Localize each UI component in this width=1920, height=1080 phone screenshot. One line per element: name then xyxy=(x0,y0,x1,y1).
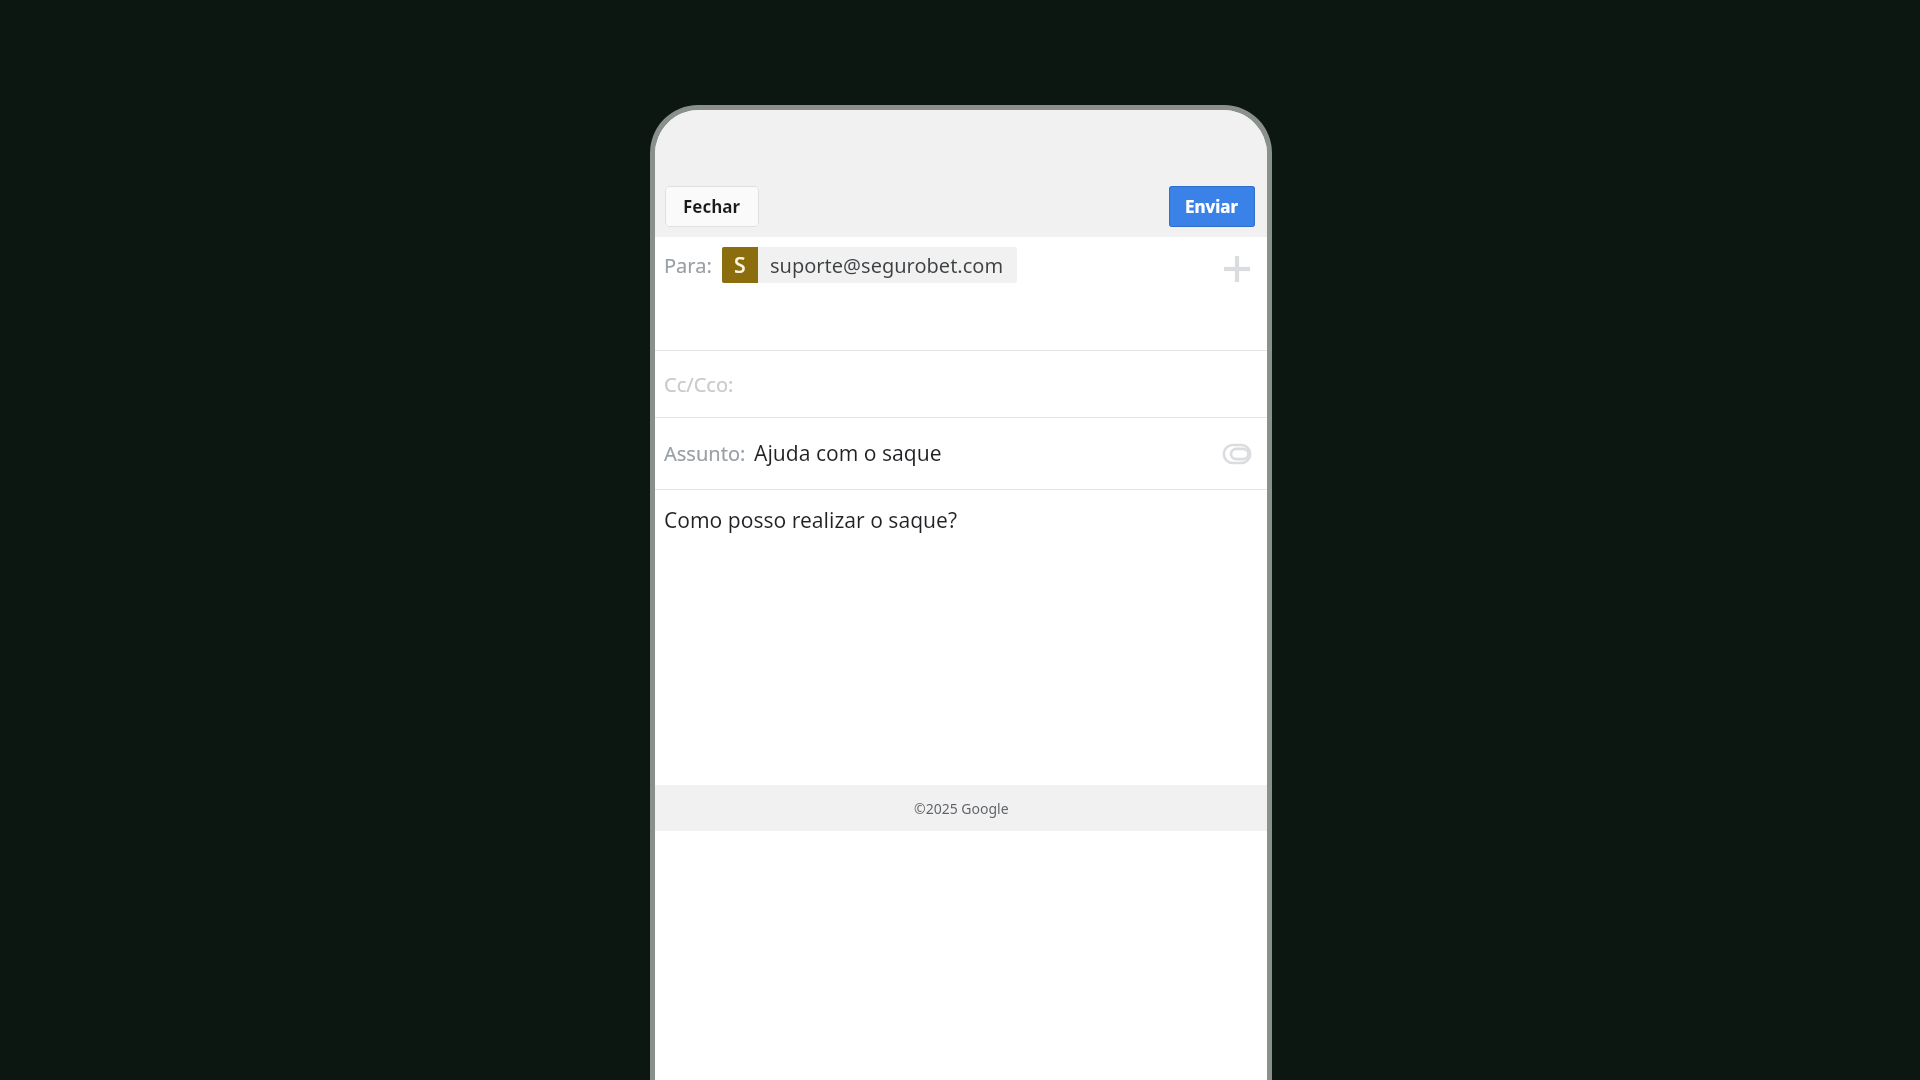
staticText: ©2025 Google xyxy=(914,799,1009,818)
button[interactable]: Fechar xyxy=(665,186,759,227)
button[interactable]: Enviar xyxy=(1169,186,1255,227)
staticText: Ajuda com o saque xyxy=(754,439,942,468)
staticText: Como posso realizar o saque? xyxy=(664,506,958,535)
button[interactable]: S xyxy=(722,247,1017,283)
staticText: Enviar xyxy=(1185,195,1239,218)
button[interactable]: Adicionar destinatário xyxy=(1215,247,1259,291)
staticText: Assunto: xyxy=(664,440,746,467)
staticText: Cc/Cco: xyxy=(664,371,734,398)
button[interactable]: Para: xyxy=(655,237,1267,350)
staticText: Fechar xyxy=(683,195,741,218)
staticText: S xyxy=(734,251,746,280)
button[interactable]: Assunto: xyxy=(655,418,1267,489)
button[interactable]: Como posso realizar o saque? xyxy=(655,490,1267,785)
button[interactable]: Anexar arquivo xyxy=(1215,432,1259,476)
staticText: Para: xyxy=(664,252,712,279)
button[interactable]: Cc/Cco: xyxy=(655,351,1267,417)
staticText: suporte@segurobet.com xyxy=(770,252,1004,279)
